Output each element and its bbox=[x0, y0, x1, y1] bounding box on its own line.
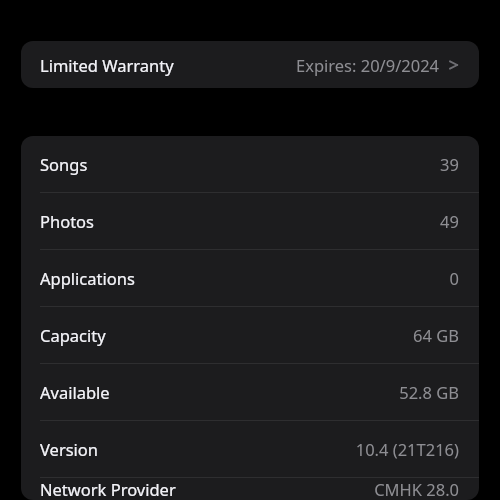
staticText: Songs bbox=[40, 153, 88, 175]
button[interactable]: Applications bbox=[21, 250, 479, 306]
staticText: 39 bbox=[440, 153, 459, 175]
staticText: 0 bbox=[449, 267, 459, 289]
staticText: CMHK 28.0 bbox=[374, 478, 459, 500]
button[interactable]: Photos bbox=[21, 193, 479, 249]
staticText: 10.4 (21T216) bbox=[355, 438, 459, 460]
button[interactable]: Songs bbox=[21, 136, 479, 192]
staticText: Expires: 20/9/2024 bbox=[296, 54, 440, 76]
staticText: Network Provider bbox=[40, 478, 176, 500]
staticText: Photos bbox=[40, 210, 95, 232]
staticText: Limited Warranty bbox=[40, 54, 174, 76]
staticText: Version bbox=[40, 438, 99, 460]
staticText: Available bbox=[40, 381, 110, 403]
button[interactable]: Limited Warranty bbox=[21, 41, 479, 88]
staticText: 52.8 GB bbox=[399, 381, 459, 403]
staticText: 49 bbox=[440, 210, 459, 232]
button[interactable]: Network Provider bbox=[21, 478, 479, 500]
button[interactable]: Version bbox=[21, 421, 479, 477]
staticText: 64 GB bbox=[413, 324, 459, 346]
staticText: Applications bbox=[40, 267, 135, 289]
staticText: Capacity bbox=[40, 324, 106, 346]
button[interactable]: Available bbox=[21, 364, 479, 420]
button[interactable]: Capacity bbox=[21, 307, 479, 363]
other: Limited Warranty details bbox=[448, 58, 462, 72]
